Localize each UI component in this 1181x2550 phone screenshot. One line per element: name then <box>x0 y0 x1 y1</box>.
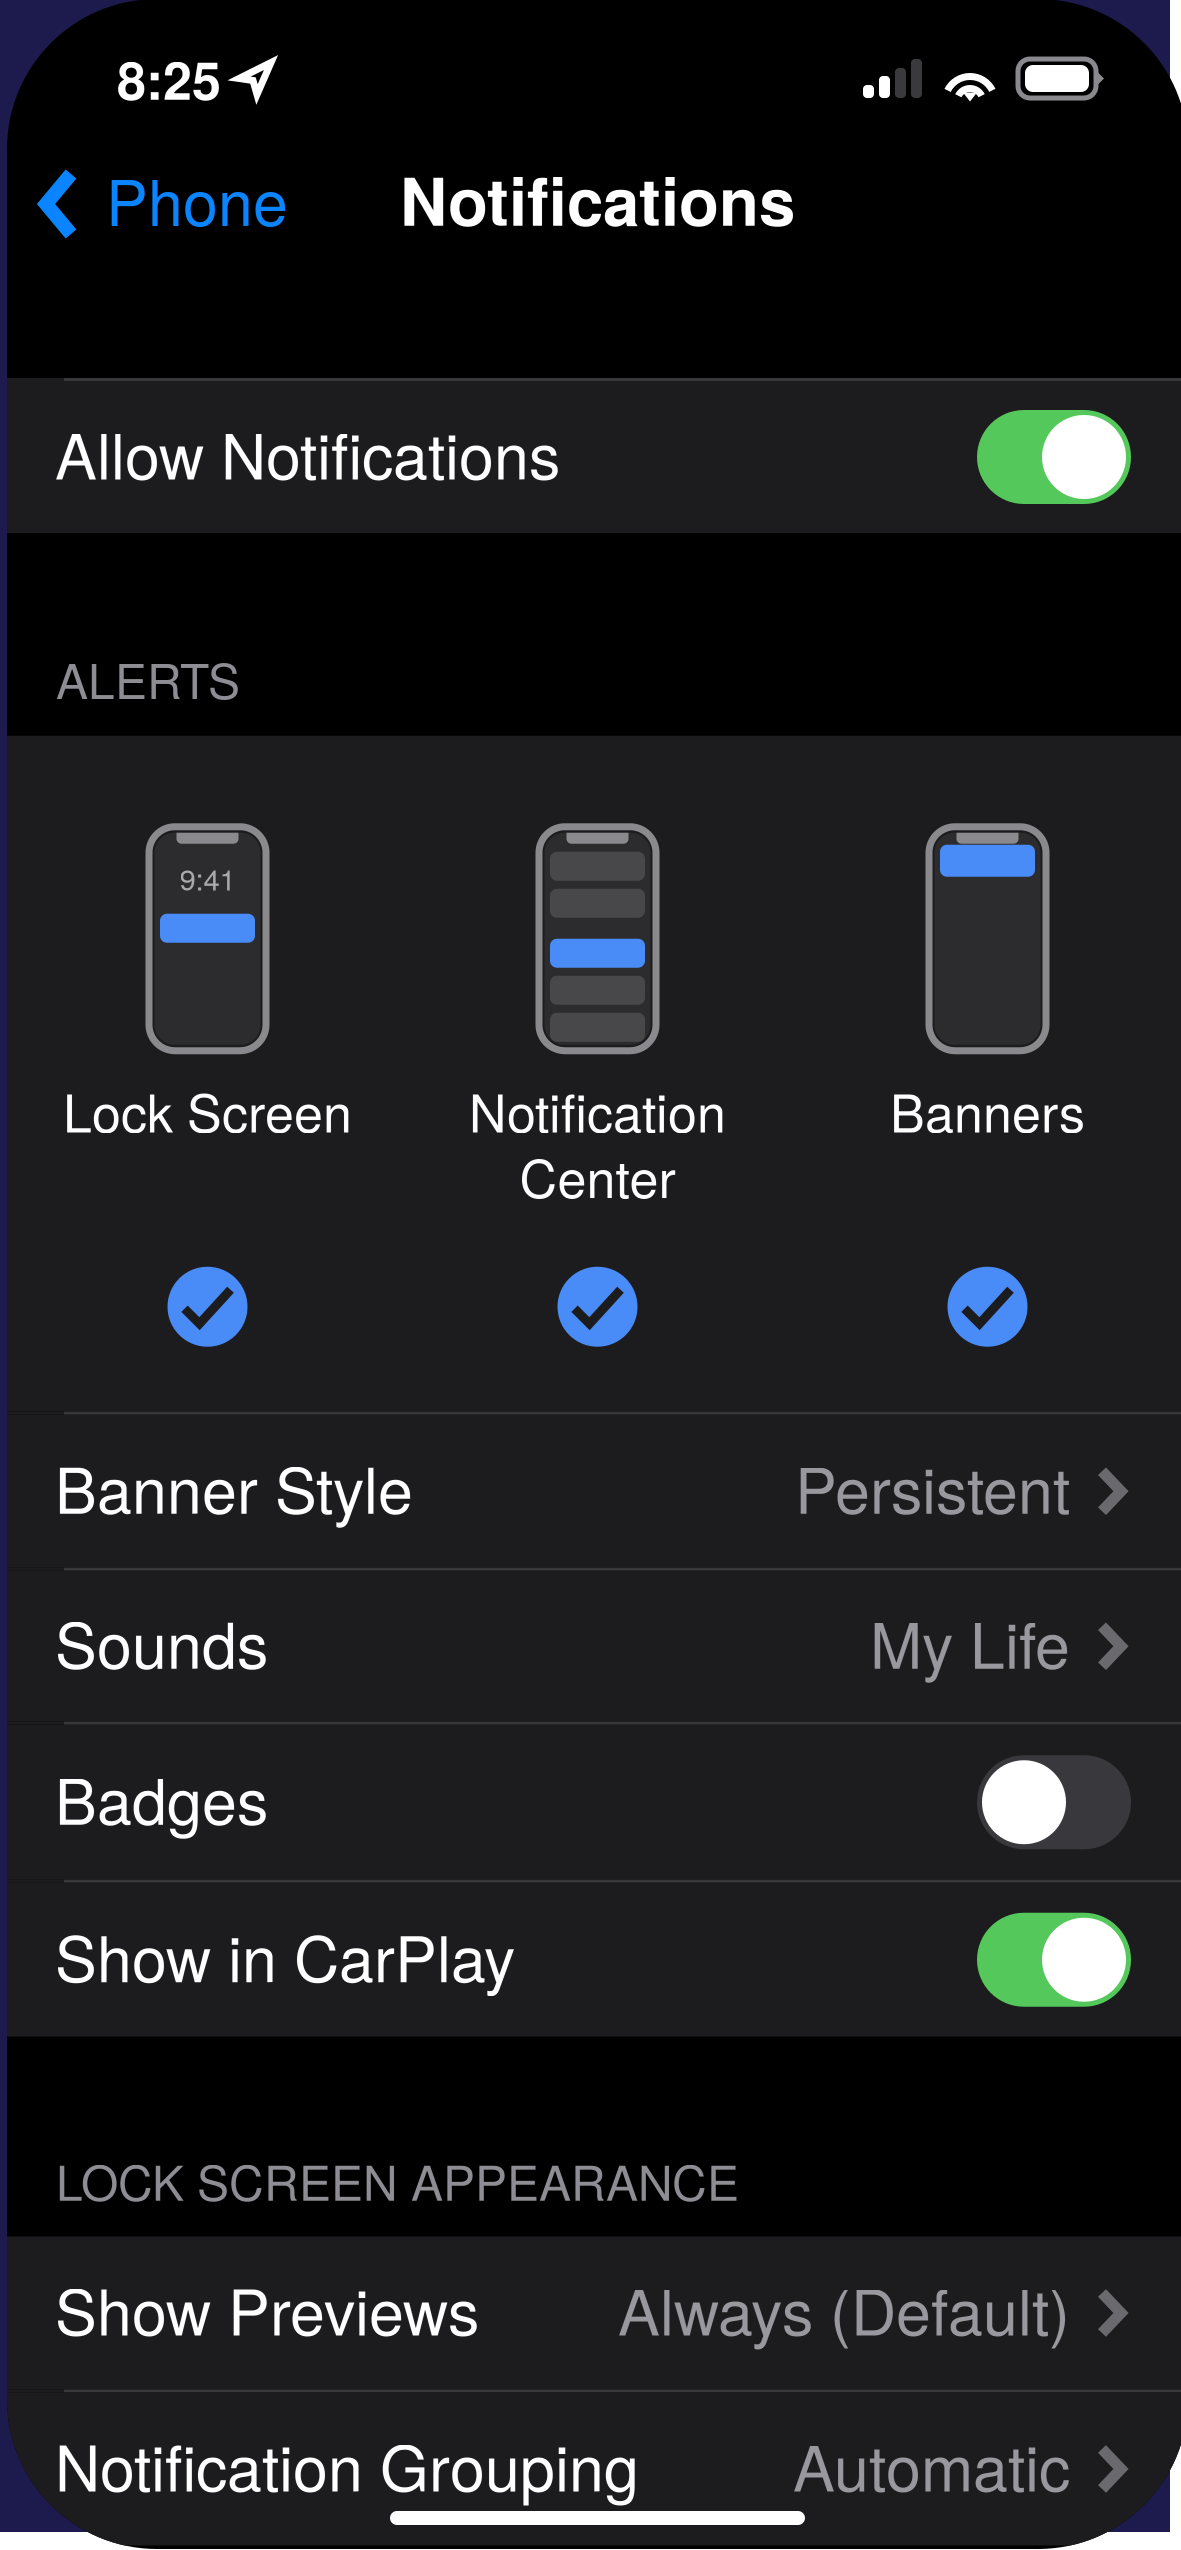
staticText: Show Previews <box>55 2264 479 2353</box>
button[interactable]: Show in CarPlay <box>7 1883 1181 2037</box>
staticText: Notification <box>469 1073 726 1147</box>
button[interactable]: Notification Center <box>557 1267 637 1347</box>
staticText: Always (Default) <box>618 2264 1070 2353</box>
staticText: Lock Screen <box>63 1073 352 1147</box>
staticText: Persistent <box>795 1442 1070 1532</box>
staticText: Sounds <box>55 1597 268 1687</box>
button[interactable]: Sounds <box>7 1571 1181 1722</box>
staticText: Phone <box>106 154 288 244</box>
staticText: Banner Style <box>55 1442 413 1532</box>
staticText: Allow Notifications <box>55 408 560 497</box>
button[interactable]: Banners <box>947 1267 1027 1347</box>
button[interactable]: Banner Style <box>7 1415 1181 1568</box>
staticText: Center <box>519 1138 675 1213</box>
button[interactable]: Notification Grouping <box>7 2392 1181 2545</box>
staticText: Banners <box>890 1073 1085 1147</box>
button[interactable]: Badges <box>7 1725 1181 1880</box>
staticText: 8:25 <box>117 41 221 116</box>
staticText: Notification Grouping <box>55 2420 639 2509</box>
button[interactable]: Phone <box>7 139 318 259</box>
staticText: 9:41 <box>179 857 235 899</box>
staticText: My Life <box>870 1597 1070 1687</box>
staticText: Notifications <box>400 152 795 246</box>
staticText: LOCK SCREEN APPEARANCE <box>56 2146 739 2214</box>
button[interactable]: Show Previews <box>7 2236 1181 2389</box>
staticText: Badges <box>55 1753 268 1843</box>
button[interactable]: Allow Notifications <box>7 381 1181 533</box>
button[interactable]: Lock Screen <box>167 1267 247 1347</box>
staticText: ALERTS <box>56 644 240 713</box>
staticText: Show in CarPlay <box>55 1910 515 2000</box>
staticText: Automatic <box>793 2420 1070 2509</box>
